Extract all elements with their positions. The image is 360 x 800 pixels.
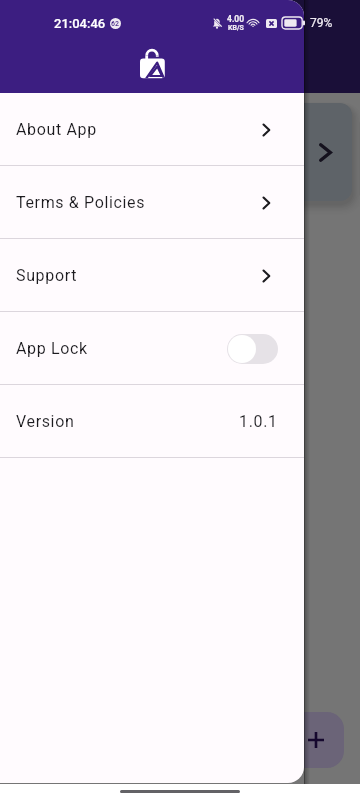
- staticText: App Lock: [16, 339, 88, 358]
- staticText: Terms & Policies: [16, 193, 146, 212]
- staticText: KB/S: [228, 24, 244, 32]
- button[interactable]: Version: [0, 385, 304, 458]
- button[interactable]: About App: [0, 93, 304, 166]
- staticText: Version: [16, 412, 75, 431]
- button[interactable]: Album: [182, 103, 352, 201]
- staticText: About App: [16, 120, 97, 139]
- staticText: Support: [16, 266, 78, 285]
- staticText: 1.0.1: [239, 412, 278, 431]
- staticText: 21:04:46: [54, 16, 106, 31]
- button[interactable]: App Lock: [227, 334, 278, 364]
- staticText: 62: [111, 20, 120, 28]
- button[interactable]: Terms & Policies: [0, 166, 304, 239]
- button[interactable]: Support: [0, 239, 304, 312]
- button[interactable]: App Lock: [0, 312, 304, 385]
- staticText: 79%: [310, 16, 333, 30]
- staticText: 4.00: [227, 14, 245, 24]
- button[interactable]: Add: [288, 712, 344, 768]
